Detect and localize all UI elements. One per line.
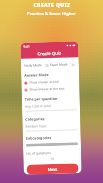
staticText: CREATE QUIZ xyxy=(33,2,71,9)
staticText: 9:41 xyxy=(23,44,30,49)
staticText: Categories xyxy=(25,116,45,122)
button[interactable]: Show answer at the end xyxy=(24,86,77,92)
staticText: Answer Mode xyxy=(24,72,49,78)
staticText: Show answer at end xyxy=(29,80,59,85)
button[interactable]: Exam Mode xyxy=(50,62,76,67)
staticText: Subcategories xyxy=(26,135,52,141)
staticText: Exam Mode xyxy=(50,62,68,67)
staticText: Random Topic xyxy=(25,124,47,129)
staticText: No. of questions xyxy=(26,151,51,156)
staticText: Avg 1:30s in total xyxy=(25,104,51,109)
staticText: Practice & Score Higher xyxy=(27,11,76,17)
staticText: Create Quiz xyxy=(37,51,62,57)
staticText: 10 xyxy=(50,157,54,161)
button[interactable]: Show answer at end xyxy=(24,79,76,85)
staticText: Show answer at the end xyxy=(29,87,65,91)
button[interactable]: Next xyxy=(26,163,79,175)
staticText: Study Mode xyxy=(24,63,42,68)
staticText: Time per question xyxy=(25,96,58,102)
button[interactable]: Study Mode xyxy=(24,63,50,68)
staticText: Next xyxy=(47,167,58,172)
